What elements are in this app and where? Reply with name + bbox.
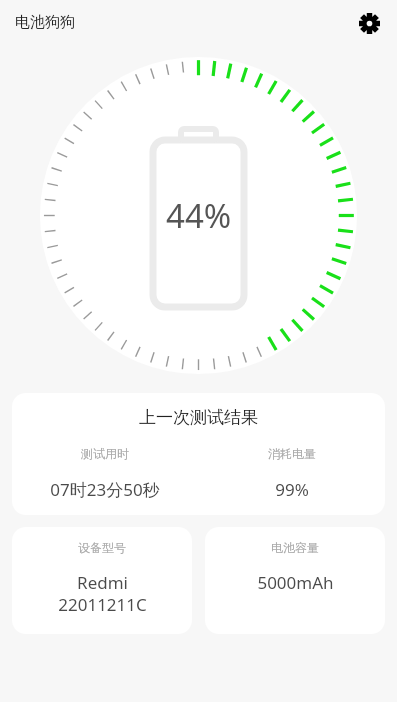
button[interactable]: 设备型号	[12, 527, 192, 634]
staticText: 电池狗狗	[15, 13, 75, 32]
staticText: 5000mAh	[257, 571, 334, 594]
staticText: 上一次测试结果	[12, 407, 385, 428]
staticText: 电池容量	[271, 540, 319, 555]
button[interactable]: 电池容量	[205, 527, 385, 634]
staticText: 07时23分50秒	[50, 478, 160, 501]
button[interactable]: 上一次测试结果	[12, 393, 385, 515]
button[interactable]: Settings	[353, 7, 385, 39]
staticText: 99%	[275, 478, 309, 501]
staticText: 测试用时	[81, 446, 129, 461]
staticText: 消耗电量	[268, 446, 316, 461]
staticText: 44%	[166, 193, 232, 238]
staticText: 设备型号	[78, 540, 126, 555]
staticText: Redmi 22011211C	[58, 571, 147, 616]
